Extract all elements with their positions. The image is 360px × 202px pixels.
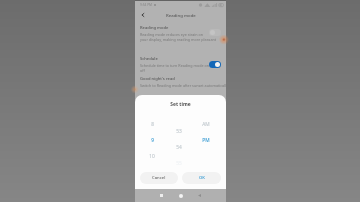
button[interactable]: Cancel [140,172,178,184]
button[interactable]: Turn on [209,29,221,36]
staticText: Cancel [152,175,166,181]
button[interactable]: Recents [156,189,167,202]
staticText: Switch to Reading mode after sunset auto… [140,83,226,88]
staticText: Set time [135,101,226,108]
staticText: Reading mode [140,25,169,31]
staticText: 10 [149,153,155,160]
staticText: Reading mode [166,12,196,18]
staticText: PM [202,137,210,144]
button[interactable]: Back [139,11,147,19]
staticText: OK [199,175,205,181]
button[interactable]: Schedule [135,56,226,73]
staticText: 9:54 PM [140,3,153,7]
button[interactable]: 8 [144,121,160,128]
staticText: 54 [176,144,182,151]
staticText: 55 [176,160,182,167]
staticText: Reading mode reduces eye strain on your … [140,32,217,42]
button[interactable]: Reading mode [135,25,226,42]
staticText: 8 [151,121,154,128]
staticText: Schedule time to turn Reading mode on an… [140,63,217,73]
staticText: AM [202,121,210,128]
button[interactable]: 10 [144,153,160,160]
staticText: Schedule [140,56,158,62]
button[interactable]: 54 [171,144,187,151]
button[interactable]: Back [194,189,205,202]
button[interactable]: OK [182,172,221,184]
button[interactable]: PM [198,137,214,144]
button[interactable]: Turn off [209,61,221,68]
staticText: 9 [151,137,154,144]
button[interactable]: Home [175,189,186,202]
button[interactable]: Good night's read [135,76,226,93]
staticText: 53 [176,128,182,135]
button[interactable]: 53 [171,128,187,135]
button[interactable]: AM [198,121,214,128]
button[interactable]: 9 [144,137,160,144]
staticText: Good night's read [140,76,175,82]
